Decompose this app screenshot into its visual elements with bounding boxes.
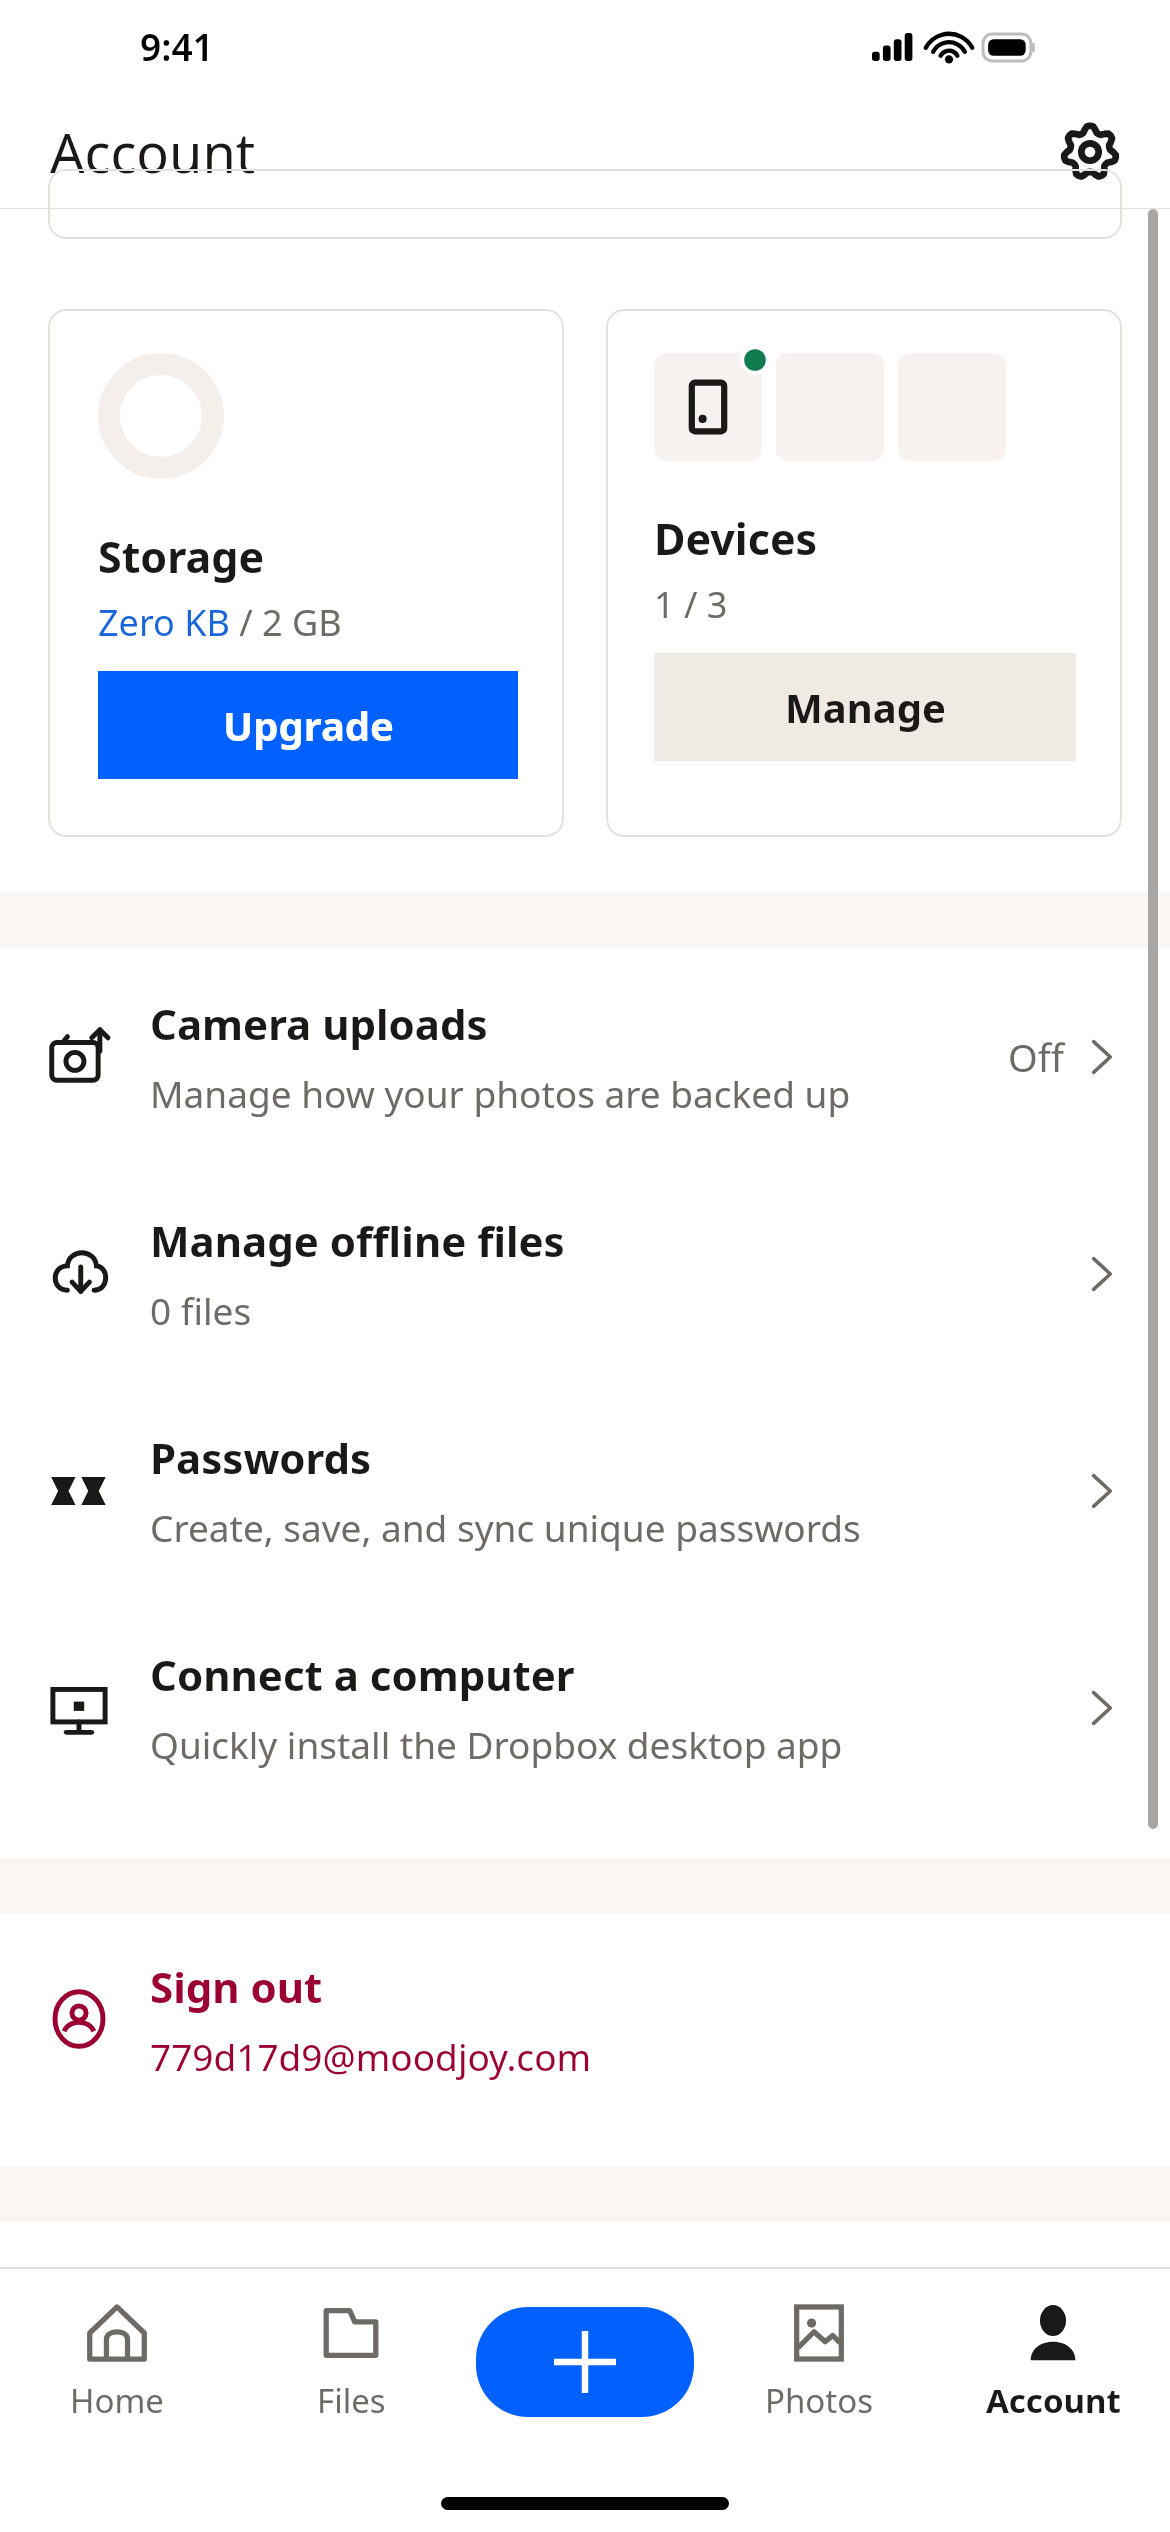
staticText: Storage: [98, 527, 265, 586]
button[interactable]: Sign out: [0, 1914, 1170, 2124]
button[interactable]: Passwords: [0, 1382, 1170, 1599]
button[interactable]: Upgrade: [98, 671, 518, 779]
staticText: Manage: [785, 680, 946, 734]
staticText: Quickly install the Dropbox desktop app: [150, 1719, 843, 1769]
button[interactable]: Photos: [702, 2267, 936, 2457]
staticText: 779d17d9@moodjoy.com: [150, 2031, 592, 2081]
staticText: Files: [317, 2378, 386, 2423]
button[interactable]: Connect a computer: [0, 1599, 1170, 1816]
button[interactable]: Home: [0, 2267, 234, 2457]
staticText: Home: [70, 2378, 164, 2423]
staticText: Passwords: [150, 1429, 372, 1486]
staticText: Sign out: [150, 1958, 323, 2015]
staticText: Zero KB / 2 GB: [98, 598, 342, 647]
button[interactable]: Storage: [48, 309, 564, 837]
button[interactable]: Account: [936, 2267, 1170, 2457]
staticText: Upgrade: [223, 698, 394, 752]
staticText: Account: [986, 2378, 1121, 2423]
staticText: Photos: [765, 2378, 874, 2423]
staticText: 9:41: [140, 21, 214, 71]
button[interactable]: Devices: [606, 309, 1122, 837]
staticText: Connect a computer: [150, 1646, 575, 1703]
button[interactable]: Files: [234, 2267, 468, 2457]
staticText: Manage offline files: [150, 1212, 565, 1269]
button[interactable]: Create: [476, 2307, 694, 2417]
button[interactable]: Camera uploads: [0, 948, 1170, 1165]
staticText: Camera uploads: [150, 995, 488, 1052]
staticText: Create, save, and sync unique passwords: [150, 1502, 861, 1552]
staticText: 1 / 3: [654, 580, 728, 629]
button[interactable]: Manage offline files: [0, 1165, 1170, 1382]
button[interactable]: Settings: [1052, 114, 1128, 190]
staticText: Devices: [654, 509, 818, 568]
button[interactable]: Manage: [654, 653, 1076, 761]
staticText: Account: [50, 115, 256, 189]
staticText: 0 files: [150, 1285, 252, 1335]
staticText: Manage how your photos are backed up: [150, 1068, 851, 1118]
staticText: Off: [1008, 1031, 1064, 1083]
button[interactable]: [48, 169, 1122, 239]
